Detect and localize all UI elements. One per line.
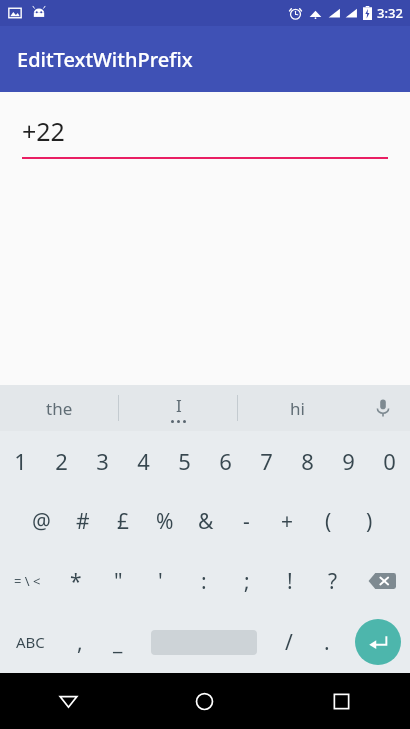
button[interactable]: Space bbox=[137, 611, 270, 673]
button[interactable]: = \ < bbox=[0, 551, 55, 611]
staticText: 8 bbox=[301, 446, 314, 476]
button[interactable]: 9 bbox=[328, 431, 369, 491]
staticText: 6 bbox=[219, 446, 232, 476]
staticText: % bbox=[156, 507, 174, 536]
button[interactable]: Enter bbox=[346, 611, 410, 673]
staticText: + bbox=[281, 507, 294, 536]
staticText: 5 bbox=[178, 446, 191, 476]
button[interactable]: - bbox=[226, 491, 267, 551]
button[interactable]: : bbox=[182, 551, 225, 611]
button[interactable]: Delete bbox=[354, 551, 410, 611]
button[interactable]: Voice input bbox=[356, 385, 410, 431]
staticText: £ bbox=[117, 507, 130, 536]
button[interactable]: ( bbox=[308, 491, 349, 551]
button[interactable]: 7 bbox=[246, 431, 287, 491]
button[interactable]: # bbox=[62, 491, 103, 551]
staticText: EditTextWithPrefix bbox=[17, 46, 193, 73]
button[interactable]: the bbox=[0, 385, 118, 431]
staticText: _ bbox=[113, 628, 123, 657]
staticText: 1 bbox=[14, 446, 27, 476]
staticText: @ bbox=[32, 507, 51, 536]
button[interactable]: 8 bbox=[287, 431, 328, 491]
staticText: # bbox=[76, 507, 90, 536]
button[interactable]: * bbox=[55, 551, 97, 611]
staticText: 7 bbox=[260, 446, 273, 476]
button[interactable]: ; bbox=[225, 551, 268, 611]
staticText: +22 bbox=[22, 114, 65, 148]
button[interactable]: ? bbox=[311, 551, 354, 611]
button[interactable]: ABC bbox=[0, 611, 61, 673]
staticText: ? bbox=[328, 567, 338, 596]
staticText: 3 bbox=[96, 446, 109, 476]
staticText: ( bbox=[325, 507, 332, 536]
button[interactable]: Back bbox=[0, 673, 136, 729]
button[interactable]: _ bbox=[99, 611, 137, 673]
staticText: ; bbox=[244, 567, 250, 596]
button[interactable]: , bbox=[61, 611, 99, 673]
button[interactable]: 5 bbox=[164, 431, 205, 491]
staticText: : bbox=[201, 567, 207, 596]
button[interactable]: I bbox=[119, 385, 237, 431]
button[interactable]: 2 bbox=[41, 431, 82, 491]
button[interactable]: % bbox=[144, 491, 185, 551]
button[interactable]: . bbox=[308, 611, 346, 673]
button[interactable]: 3 bbox=[82, 431, 123, 491]
button[interactable]: 0 bbox=[369, 431, 410, 491]
staticText: 9 bbox=[342, 446, 355, 476]
button[interactable]: + bbox=[267, 491, 308, 551]
button[interactable]: Home bbox=[136, 673, 273, 729]
staticText: - bbox=[243, 507, 250, 536]
staticText: " bbox=[114, 567, 123, 596]
staticText: = \ < bbox=[14, 572, 41, 590]
button[interactable]: 1 bbox=[0, 431, 41, 491]
button[interactable]: @ bbox=[20, 491, 62, 551]
button[interactable]: " bbox=[97, 551, 139, 611]
staticText: 0 bbox=[383, 446, 396, 476]
button[interactable]: ' bbox=[139, 551, 182, 611]
button[interactable]: ! bbox=[268, 551, 311, 611]
staticText: . bbox=[324, 628, 330, 657]
staticText: ABC bbox=[16, 632, 45, 652]
staticText: / bbox=[285, 628, 293, 657]
staticText: I bbox=[176, 394, 182, 417]
staticText: ) bbox=[366, 507, 373, 536]
staticText: * bbox=[70, 567, 82, 596]
button[interactable]: ) bbox=[349, 491, 390, 551]
staticText: the bbox=[46, 397, 73, 420]
button[interactable]: / bbox=[270, 611, 308, 673]
staticText: , bbox=[77, 628, 83, 657]
button[interactable]: Recents bbox=[273, 673, 410, 729]
button[interactable]: 4 bbox=[123, 431, 164, 491]
button[interactable]: & bbox=[185, 491, 226, 551]
button[interactable]: £ bbox=[103, 491, 144, 551]
staticText: ! bbox=[287, 567, 293, 596]
staticText: hi bbox=[290, 397, 305, 420]
staticText: 2 bbox=[55, 446, 68, 476]
staticText: 3:32 bbox=[377, 4, 403, 22]
button[interactable]: 6 bbox=[205, 431, 246, 491]
button[interactable]: hi bbox=[238, 385, 356, 431]
staticText: ' bbox=[158, 567, 163, 596]
staticText: & bbox=[198, 507, 214, 536]
staticText: 4 bbox=[137, 446, 150, 476]
